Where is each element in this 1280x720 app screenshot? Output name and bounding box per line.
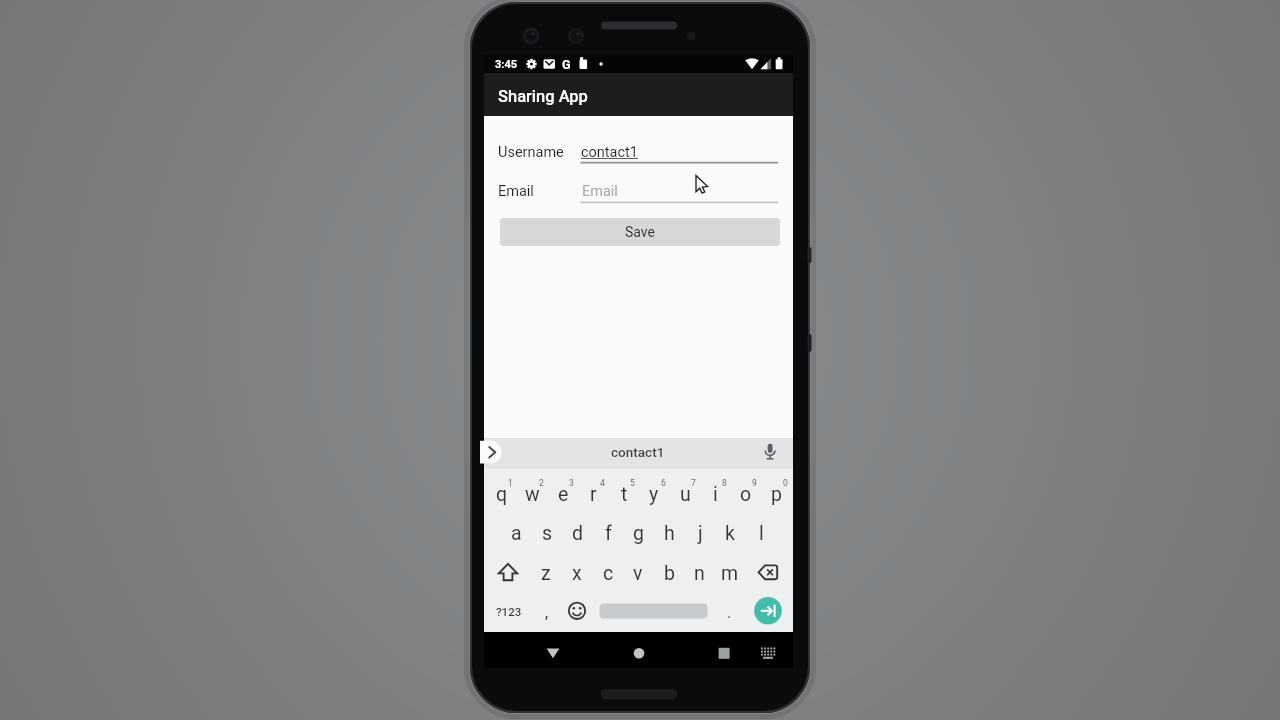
staticText: j xyxy=(698,522,703,545)
button[interactable]: x xyxy=(487,553,667,593)
staticText: 3:45 xyxy=(495,58,518,71)
staticText: Save xyxy=(625,224,655,240)
staticText: n xyxy=(694,562,705,585)
staticText: 8 xyxy=(722,478,727,488)
staticText: 1 xyxy=(508,478,513,488)
button[interactable]: z xyxy=(456,553,636,593)
staticText: v xyxy=(633,562,643,585)
button[interactable]: p xyxy=(686,474,866,514)
button[interactable]: n xyxy=(609,553,789,593)
button[interactable]: q xyxy=(412,474,592,514)
button[interactable]: i xyxy=(625,474,805,514)
staticText: e xyxy=(558,483,569,506)
button[interactable] xyxy=(753,553,783,592)
staticText: z xyxy=(541,562,551,585)
button[interactable]: c xyxy=(518,553,698,593)
button[interactable]: g xyxy=(548,513,728,553)
staticText: w xyxy=(525,483,540,506)
staticText: . xyxy=(727,603,732,622)
staticText: u xyxy=(680,483,691,506)
button[interactable] xyxy=(580,180,778,204)
button[interactable]: v xyxy=(548,553,728,593)
staticText: Email xyxy=(498,183,534,200)
button[interactable]: b xyxy=(579,553,759,593)
staticText: k xyxy=(725,522,735,545)
button[interactable]: s xyxy=(457,513,637,553)
button[interactable]: y xyxy=(564,474,744,514)
button[interactable]: r xyxy=(503,474,683,514)
button[interactable] xyxy=(752,438,788,469)
button[interactable]: f xyxy=(518,513,698,553)
staticText: b xyxy=(664,562,675,585)
staticText: a xyxy=(511,522,522,545)
button[interactable]: . xyxy=(639,592,819,632)
staticText: s xyxy=(542,522,553,545)
staticText: i xyxy=(713,483,718,506)
button[interactable]: a xyxy=(426,513,606,553)
staticText: t xyxy=(621,483,628,506)
staticText: 9 xyxy=(752,478,757,488)
staticText: 4 xyxy=(600,478,605,488)
button[interactable]: m xyxy=(640,553,820,593)
staticText: y xyxy=(649,483,659,506)
staticText: l xyxy=(759,522,764,545)
button[interactable] xyxy=(537,637,569,669)
button[interactable]: ?123 xyxy=(419,591,599,631)
staticText: f xyxy=(605,522,612,545)
staticText: ?123 xyxy=(496,605,522,618)
button[interactable] xyxy=(580,140,778,164)
button[interactable]: k xyxy=(640,513,820,553)
staticText: p xyxy=(771,483,782,506)
staticText: contact1 xyxy=(581,144,638,161)
button[interactable]: o xyxy=(656,474,836,514)
staticText: o xyxy=(740,483,752,506)
button[interactable]: u xyxy=(595,474,775,514)
button[interactable] xyxy=(493,553,523,592)
button[interactable]: Save xyxy=(500,218,780,246)
button[interactable] xyxy=(752,637,784,669)
staticText: Email xyxy=(582,183,618,200)
staticText: d xyxy=(572,522,583,545)
staticText: 7 xyxy=(691,478,696,488)
button[interactable]: e xyxy=(473,474,653,514)
staticText: , xyxy=(545,603,549,622)
staticText: contact1 xyxy=(611,444,665,460)
staticText: x xyxy=(572,562,582,585)
button[interactable]: , xyxy=(457,592,637,632)
button[interactable]: l xyxy=(671,513,851,553)
button[interactable]: w xyxy=(442,474,622,514)
button[interactable] xyxy=(600,592,708,630)
button[interactable]: h xyxy=(579,513,759,553)
staticText: Username xyxy=(498,144,564,161)
staticText: 2 xyxy=(539,478,544,488)
staticText: g xyxy=(633,522,644,545)
staticText: m xyxy=(721,562,739,585)
button[interactable]: j xyxy=(610,513,790,553)
button[interactable] xyxy=(484,438,514,469)
staticText: Sharing App xyxy=(498,87,588,106)
staticText: 5 xyxy=(630,478,635,488)
staticText: 6 xyxy=(661,478,666,488)
staticText: 0 xyxy=(783,478,788,488)
staticText: 3 xyxy=(569,478,574,488)
staticText: q xyxy=(496,483,508,506)
staticText: c xyxy=(603,562,614,585)
button[interactable]: t xyxy=(534,474,714,514)
staticText: G xyxy=(562,57,571,72)
staticText: h xyxy=(664,522,675,545)
staticText: r xyxy=(590,483,597,506)
button[interactable] xyxy=(754,592,782,630)
button[interactable]: d xyxy=(487,513,667,553)
button[interactable] xyxy=(708,637,740,669)
button[interactable] xyxy=(562,592,592,630)
button[interactable] xyxy=(623,637,655,669)
